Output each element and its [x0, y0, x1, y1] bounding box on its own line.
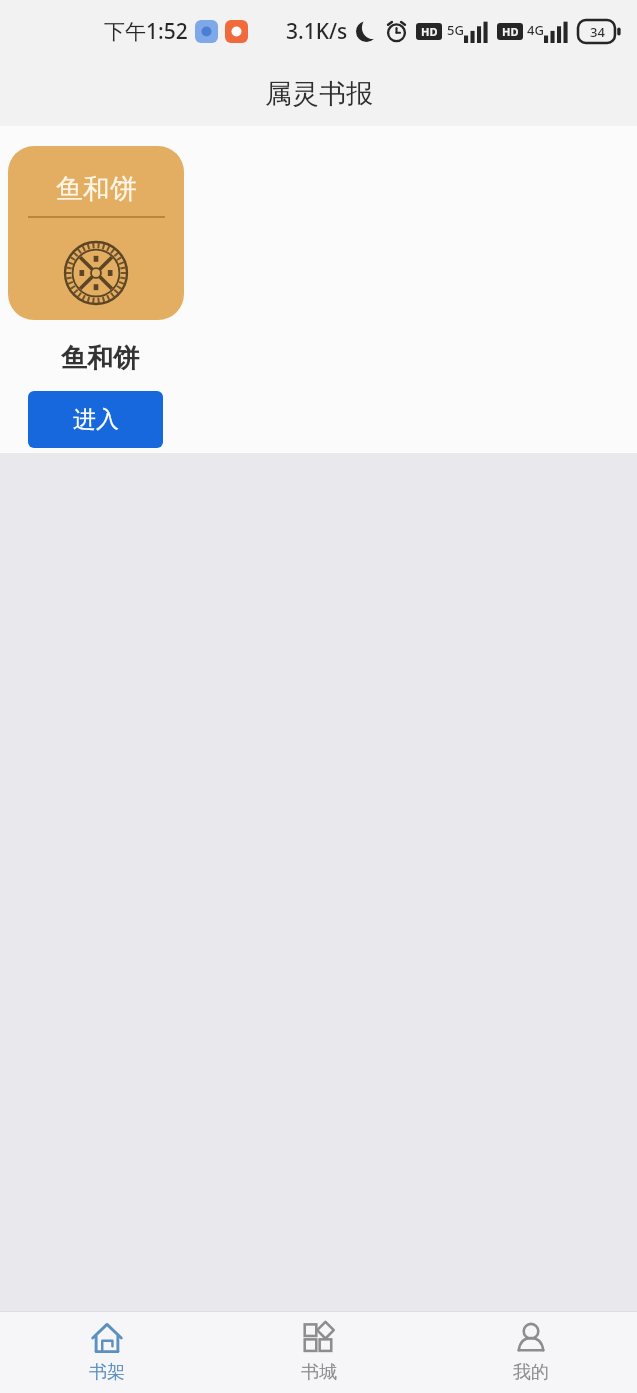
staticText: 5G	[447, 21, 464, 39]
staticText: 书城	[301, 1361, 337, 1384]
button[interactable]: 书城	[213, 1312, 425, 1393]
button[interactable]: 我的	[425, 1312, 637, 1393]
staticText: 4G	[527, 21, 544, 39]
staticText: HD	[421, 24, 438, 39]
staticText: 我的	[513, 1361, 549, 1384]
staticText: 书架	[89, 1361, 125, 1384]
staticText: HD	[502, 24, 519, 39]
staticText: 下午1:52	[104, 17, 188, 46]
staticText: 鱼和饼	[56, 172, 137, 206]
button[interactable]: 鱼和饼	[8, 146, 184, 320]
staticText: 属灵书报	[265, 77, 373, 111]
staticText: 鱼和饼	[61, 342, 139, 375]
button[interactable]: 进入	[28, 391, 163, 448]
button[interactable]: 书架	[0, 1312, 213, 1393]
staticText: 34	[590, 23, 605, 41]
staticText: 进入	[73, 405, 119, 434]
staticText: 3.1K/s	[286, 17, 348, 46]
